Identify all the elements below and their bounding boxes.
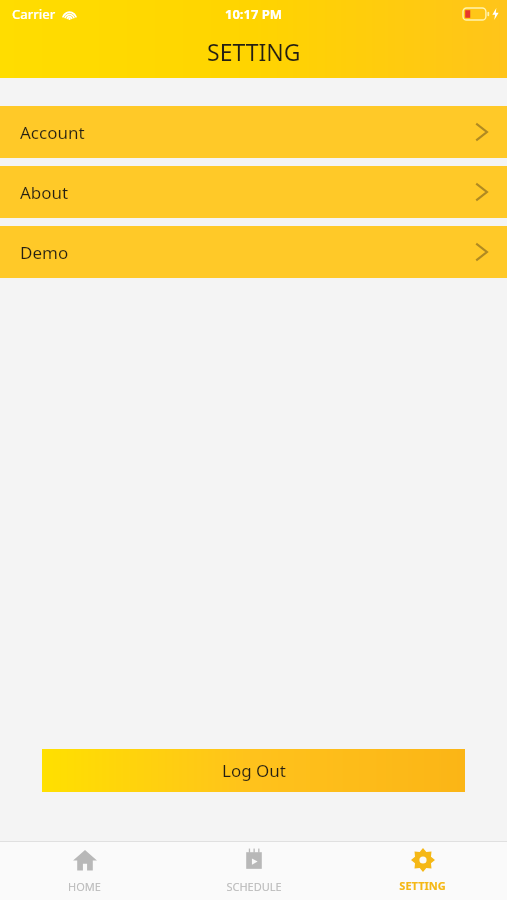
other: Schedule bbox=[241, 847, 267, 873]
button[interactable]: Home bbox=[0, 841, 169, 900]
other: Setting bbox=[411, 848, 435, 872]
button[interactable]: Demo bbox=[0, 226, 507, 278]
staticText: HOME bbox=[68, 879, 101, 894]
other: Home bbox=[72, 847, 98, 873]
staticText: SETTING bbox=[399, 878, 446, 893]
button[interactable]: About bbox=[0, 166, 507, 218]
button[interactable]: Account bbox=[0, 106, 507, 158]
button[interactable]: Schedule bbox=[169, 841, 338, 900]
staticText: Demo bbox=[20, 241, 69, 264]
button[interactable]: Log Out bbox=[42, 749, 465, 792]
staticText: SCHEDULE bbox=[226, 879, 282, 894]
staticText: Account bbox=[20, 121, 85, 144]
button[interactable]: Setting bbox=[338, 841, 507, 900]
staticText: SETTING bbox=[207, 36, 301, 67]
staticText: Log Out bbox=[222, 759, 286, 782]
staticText: About bbox=[20, 181, 69, 204]
staticText: Carrier bbox=[12, 5, 56, 23]
staticText: 10:17 PM bbox=[225, 5, 283, 23]
